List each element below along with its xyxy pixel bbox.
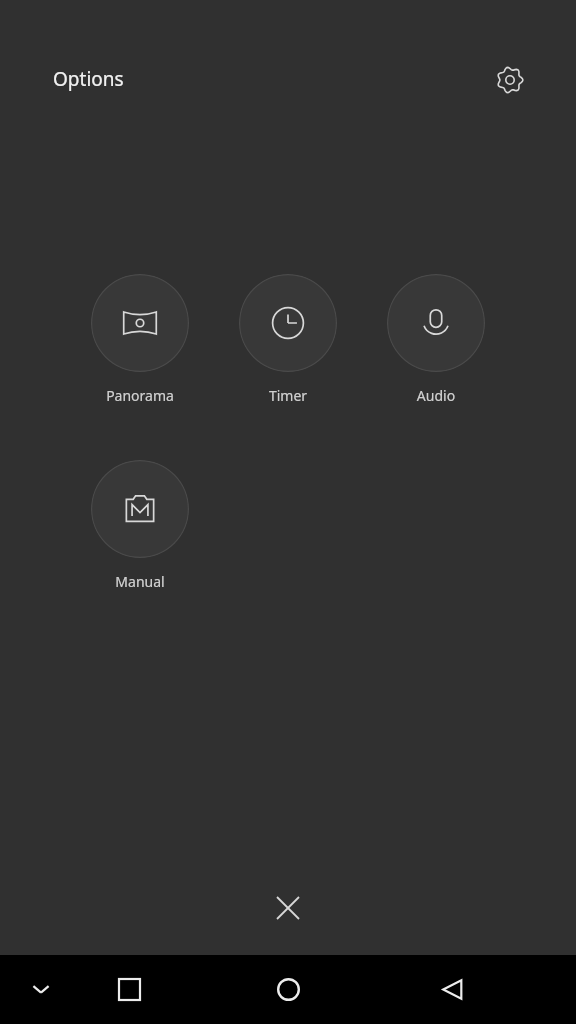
staticText: Audio (387, 386, 485, 405)
button[interactable]: Hide (17, 965, 65, 1013)
staticText: Manual (91, 572, 189, 591)
button[interactable]: Audio (387, 274, 485, 405)
staticText: Timer (239, 386, 337, 405)
button[interactable]: Close (260, 880, 316, 936)
button[interactable]: Recent apps (103, 963, 155, 1015)
staticText: Panorama (91, 386, 189, 405)
button[interactable]: Manual (91, 460, 189, 591)
button[interactable]: Timer (239, 274, 337, 405)
button[interactable]: Back (426, 963, 478, 1015)
button[interactable]: Panorama (91, 274, 189, 405)
button[interactable]: Home (262, 963, 314, 1015)
staticText: Options (53, 66, 124, 92)
button[interactable]: Settings (486, 56, 534, 104)
